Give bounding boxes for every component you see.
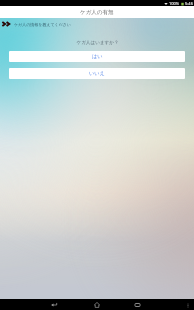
staticText: ケガ人の有無 xyxy=(80,9,114,16)
staticText: ケガ人はいますか？ xyxy=(76,40,119,46)
button[interactable]: いいえ xyxy=(9,68,185,79)
button[interactable]: More options xyxy=(184,301,192,309)
button[interactable]: Recent apps xyxy=(131,299,143,310)
button[interactable]: Back xyxy=(48,299,60,310)
staticText: いいえ xyxy=(89,70,105,77)
button[interactable]: Home xyxy=(91,299,103,310)
staticText: ケガ人の情報を教えてください xyxy=(14,22,71,27)
staticText: はい xyxy=(92,53,103,60)
staticText: 100% xyxy=(169,1,180,6)
button[interactable]: はい xyxy=(9,51,185,62)
staticText: 5:46 xyxy=(185,1,193,6)
